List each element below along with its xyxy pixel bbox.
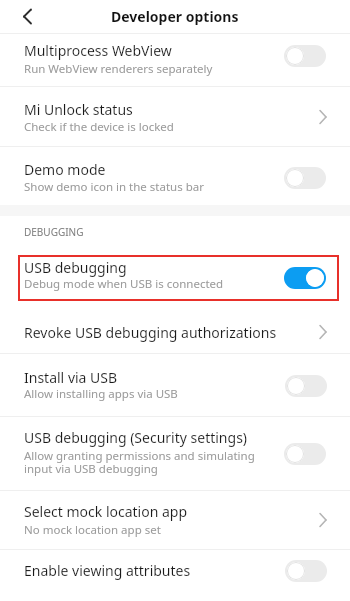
staticText: No mock location app set [24, 522, 161, 538]
staticText: Revoke USB debugging authorizations [24, 323, 277, 342]
button[interactable]: Install via USB [0, 354, 350, 416]
button[interactable] [284, 167, 326, 189]
staticText: Select mock location app [24, 502, 188, 521]
button[interactable]: Mi Unlock status [0, 87, 350, 146]
button[interactable] [13, 3, 42, 30]
staticText: Check if the device is locked [24, 119, 174, 135]
staticText: Install via USB [24, 368, 118, 387]
button[interactable]: Enable viewing attributes [0, 550, 350, 601]
button[interactable] [284, 267, 326, 289]
button[interactable]: Demo mode [0, 147, 350, 205]
staticText: Mi Unlock status [24, 100, 133, 119]
staticText: Allow installing apps via USB [24, 386, 178, 402]
button[interactable]: Select mock location app [0, 491, 350, 549]
button[interactable]: Revoke USB debugging authorizations [0, 309, 350, 353]
staticText: Demo mode [24, 160, 106, 179]
staticText: Run WebView renderers separately [24, 61, 213, 77]
staticText: Allow granting permissions and simulatin… [24, 448, 255, 464]
staticText: input via USB debugging [24, 461, 158, 477]
staticText: USB debugging (Security settings) [24, 428, 248, 447]
button[interactable] [285, 560, 327, 582]
staticText: USB debugging [24, 258, 127, 277]
staticText: DEBUGGING [24, 225, 84, 239]
staticText: Show demo icon in the status bar [24, 179, 204, 195]
staticText: Enable viewing attributes [24, 561, 191, 580]
staticText: Debug mode when USB is connected [24, 276, 224, 292]
button[interactable] [284, 443, 326, 465]
staticText: Developer options [111, 7, 239, 26]
button[interactable] [285, 375, 327, 397]
staticText: Multiprocess WebView [24, 41, 172, 60]
button[interactable]: USB debugging (Security settings) [0, 417, 350, 490]
button[interactable] [284, 45, 326, 67]
button[interactable]: Multiprocess WebView [0, 34, 350, 86]
button[interactable]: USB debugging [0, 245, 350, 309]
